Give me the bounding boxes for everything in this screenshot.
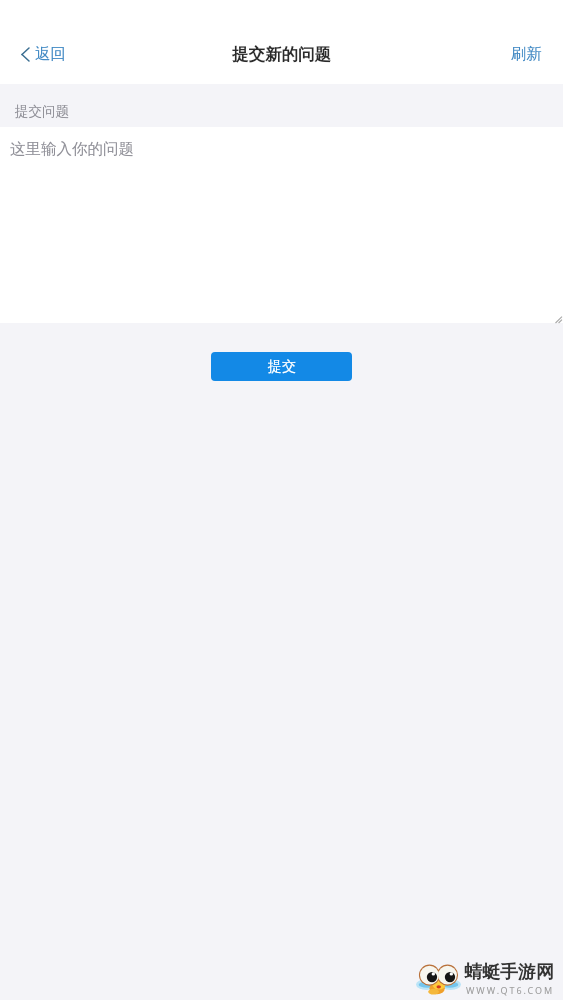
staticText: 提交新的问题 [232,44,331,65]
other: Back [22,48,29,61]
button[interactable]: 这里输入你的问题 [0,127,563,323]
other: Site logo [416,960,461,996]
button[interactable]: 刷新 [488,38,563,70]
staticText: WWW.QT6.COM [466,984,555,996]
staticText: 这里输入你的问题 [10,139,134,159]
staticText: 提交 [268,358,296,376]
staticText: 返回 [35,44,66,64]
staticText: 蜻蜓手游网 [464,961,554,984]
staticText: 刷新 [511,44,542,64]
button[interactable]: Back [0,38,80,70]
button[interactable]: 提交 [211,352,352,381]
staticText: 提交问题 [15,103,69,120]
